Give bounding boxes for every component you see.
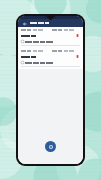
button[interactable]: Back: [21, 20, 28, 27]
button[interactable]: Download PDF: [75, 33, 80, 38]
button[interactable]: Download PDF: [18, 27, 83, 48]
button[interactable]: Download PDF: [18, 48, 83, 69]
button[interactable]: Download PDF: [75, 54, 80, 59]
button[interactable]: Add: [45, 141, 56, 152]
